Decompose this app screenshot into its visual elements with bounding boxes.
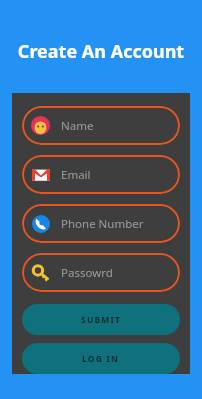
- staticText: Passowrd: [61, 265, 113, 281]
- staticText: Create An Account: [0, 39, 202, 64]
- other: Phone number: [32, 215, 50, 233]
- button[interactable]: Password: [22, 253, 180, 292]
- button[interactable]: SUBMIT: [22, 304, 180, 335]
- other: Email: [32, 166, 50, 184]
- staticText: LOG IN: [82, 353, 120, 365]
- staticText: SUBMIT: [81, 314, 122, 326]
- button[interactable]: Phone number: [22, 204, 180, 243]
- staticText: Phone Number: [61, 216, 144, 232]
- button[interactable]: LOG IN: [22, 343, 180, 374]
- button[interactable]: Name: [22, 106, 180, 145]
- other: Name: [31, 116, 50, 135]
- other: Password: [32, 264, 50, 282]
- button[interactable]: Email: [22, 155, 180, 194]
- staticText: Email: [61, 167, 91, 183]
- staticText: Name: [61, 118, 94, 134]
